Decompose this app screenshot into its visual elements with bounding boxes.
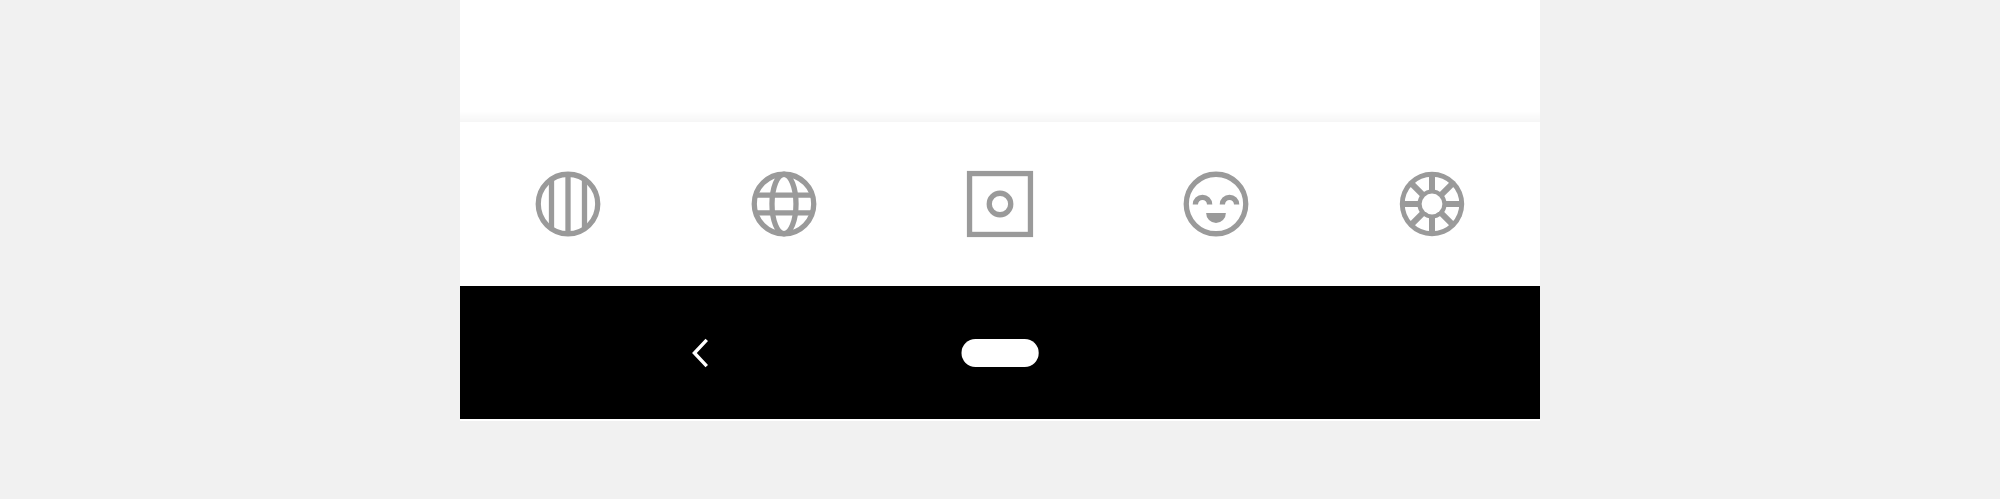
button[interactable]: Back bbox=[652, 286, 748, 419]
button[interactable]: Crop bbox=[892, 122, 1108, 286]
button[interactable]: Color wheel bbox=[1324, 122, 1540, 286]
button[interactable]: Globe bbox=[676, 122, 892, 286]
button[interactable]: Adjust bbox=[460, 122, 676, 286]
button[interactable]: Stickers bbox=[1108, 122, 1324, 286]
button[interactable]: Home bbox=[930, 323, 1070, 383]
